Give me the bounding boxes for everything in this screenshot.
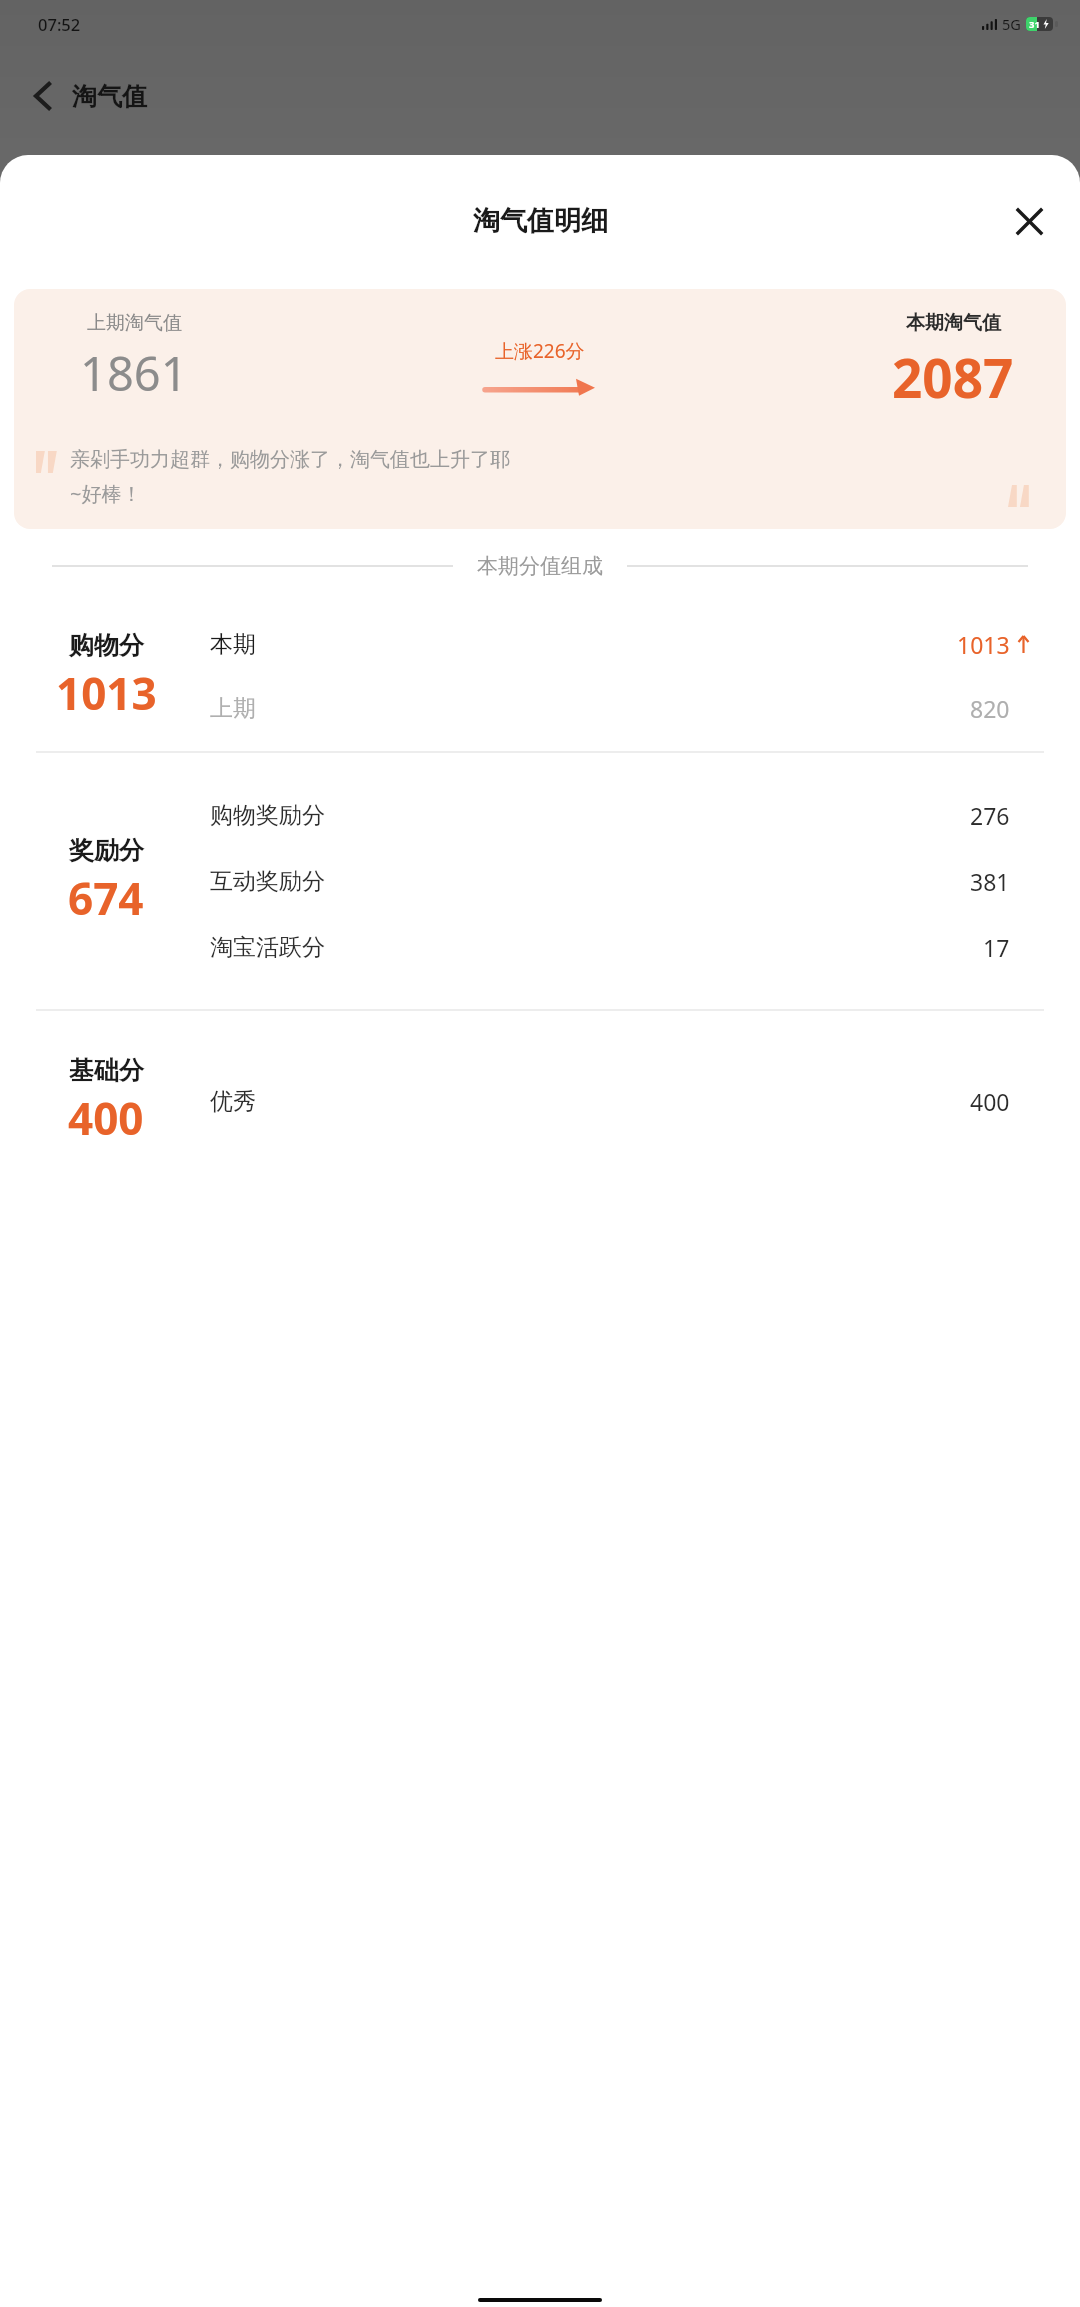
staticText: 674 <box>68 868 144 928</box>
staticText: 2087 <box>38 272 180 356</box>
button[interactable]: 上期淘气值 <box>14 289 1066 529</box>
button[interactable]: Back <box>20 74 64 118</box>
staticText: 亲剁手功力超群，购物分涨了，淘气值也上升了耶 ~好棒！ <box>70 447 510 507</box>
staticText: 400 <box>68 1088 144 1148</box>
staticText: 5G <box>1002 14 1021 34</box>
staticText: 07:52 <box>38 13 81 35</box>
staticText: 276 <box>970 800 1010 831</box>
staticText: 本期 <box>210 630 957 659</box>
staticText: 820 <box>970 693 1010 724</box>
staticText: 2087 <box>892 341 1014 413</box>
staticText: 较上月上涨226分 <box>396 278 520 300</box>
staticText: 381 <box>970 866 1010 897</box>
button[interactable]: 淘气值明细 <box>473 204 608 238</box>
staticText: 淘宝活跃分 <box>210 933 983 962</box>
staticText: 奖励分 <box>69 835 144 866</box>
staticText: 本期分值组成 <box>477 553 603 579</box>
staticText: 31 <box>1029 18 1040 31</box>
staticText: 本期淘气值 <box>906 311 1001 335</box>
staticText: 淘气值 <box>72 81 147 112</box>
staticText: 上期淘气值 <box>87 311 182 335</box>
button[interactable]: 淘宝活跃分 <box>210 915 1030 979</box>
button[interactable]: Close <box>1006 198 1052 244</box>
staticText: 互动奖励分 <box>210 867 970 896</box>
staticText: 1861 <box>80 341 188 405</box>
staticText: 1013 <box>957 629 1010 660</box>
staticText: 上期 <box>210 694 970 723</box>
staticText: 17 <box>983 932 1010 963</box>
staticText: 优秀 <box>210 1087 970 1116</box>
staticText: 购物分 <box>69 630 144 661</box>
button[interactable]: 本期 <box>210 612 1030 676</box>
button[interactable]: 优秀 <box>210 1069 1030 1133</box>
staticText: 400 <box>970 1086 1010 1117</box>
button[interactable]: 互动奖励分 <box>210 849 1030 913</box>
staticText: 基础分 <box>69 1055 144 1086</box>
button[interactable]: 上期 <box>210 676 1030 740</box>
staticText: 1013 <box>56 663 157 723</box>
button[interactable]: 购物奖励分 <box>210 783 1030 847</box>
staticText: 上涨226分 <box>495 338 585 364</box>
staticText: 购物奖励分 <box>210 801 970 830</box>
